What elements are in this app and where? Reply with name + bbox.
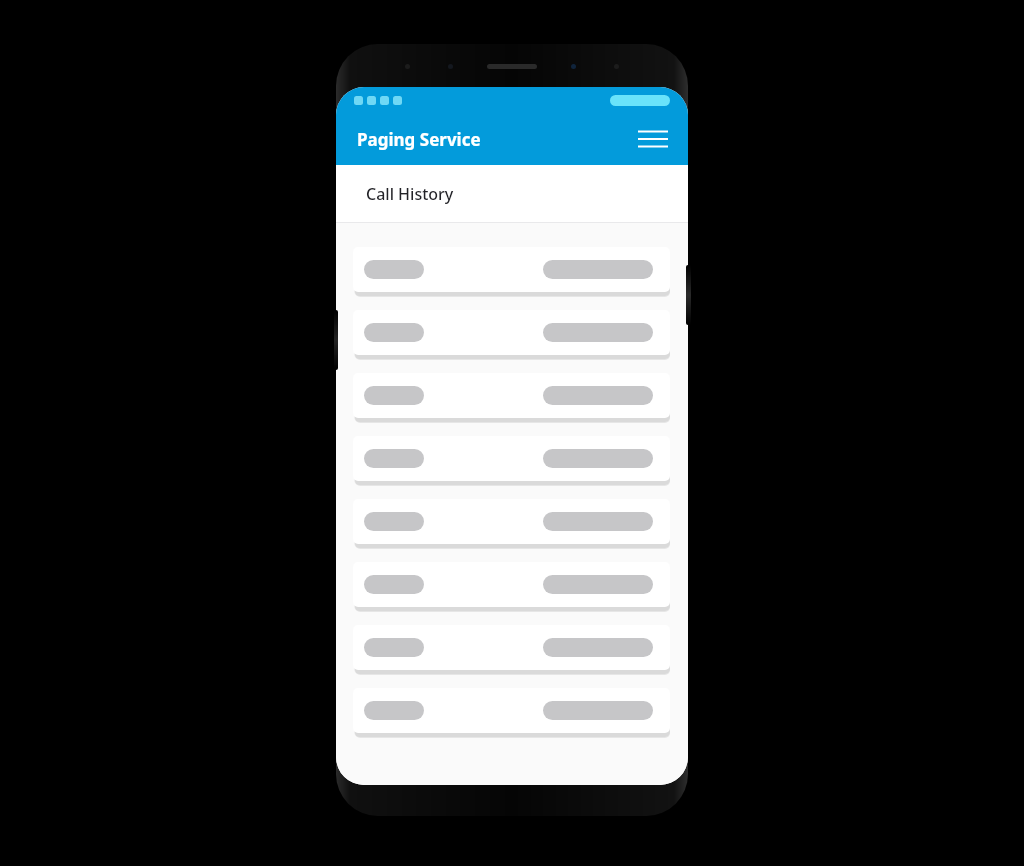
button[interactable] (353, 688, 670, 735)
button[interactable] (353, 373, 670, 420)
button[interactable] (353, 499, 670, 546)
staticText: Call History (366, 183, 454, 205)
button[interactable] (353, 562, 670, 609)
button[interactable] (353, 310, 670, 357)
button[interactable] (353, 247, 670, 294)
button[interactable] (353, 436, 670, 483)
button[interactable]: Open menu (636, 122, 670, 156)
staticText: Paging Service (357, 128, 481, 151)
button[interactable] (353, 625, 670, 672)
